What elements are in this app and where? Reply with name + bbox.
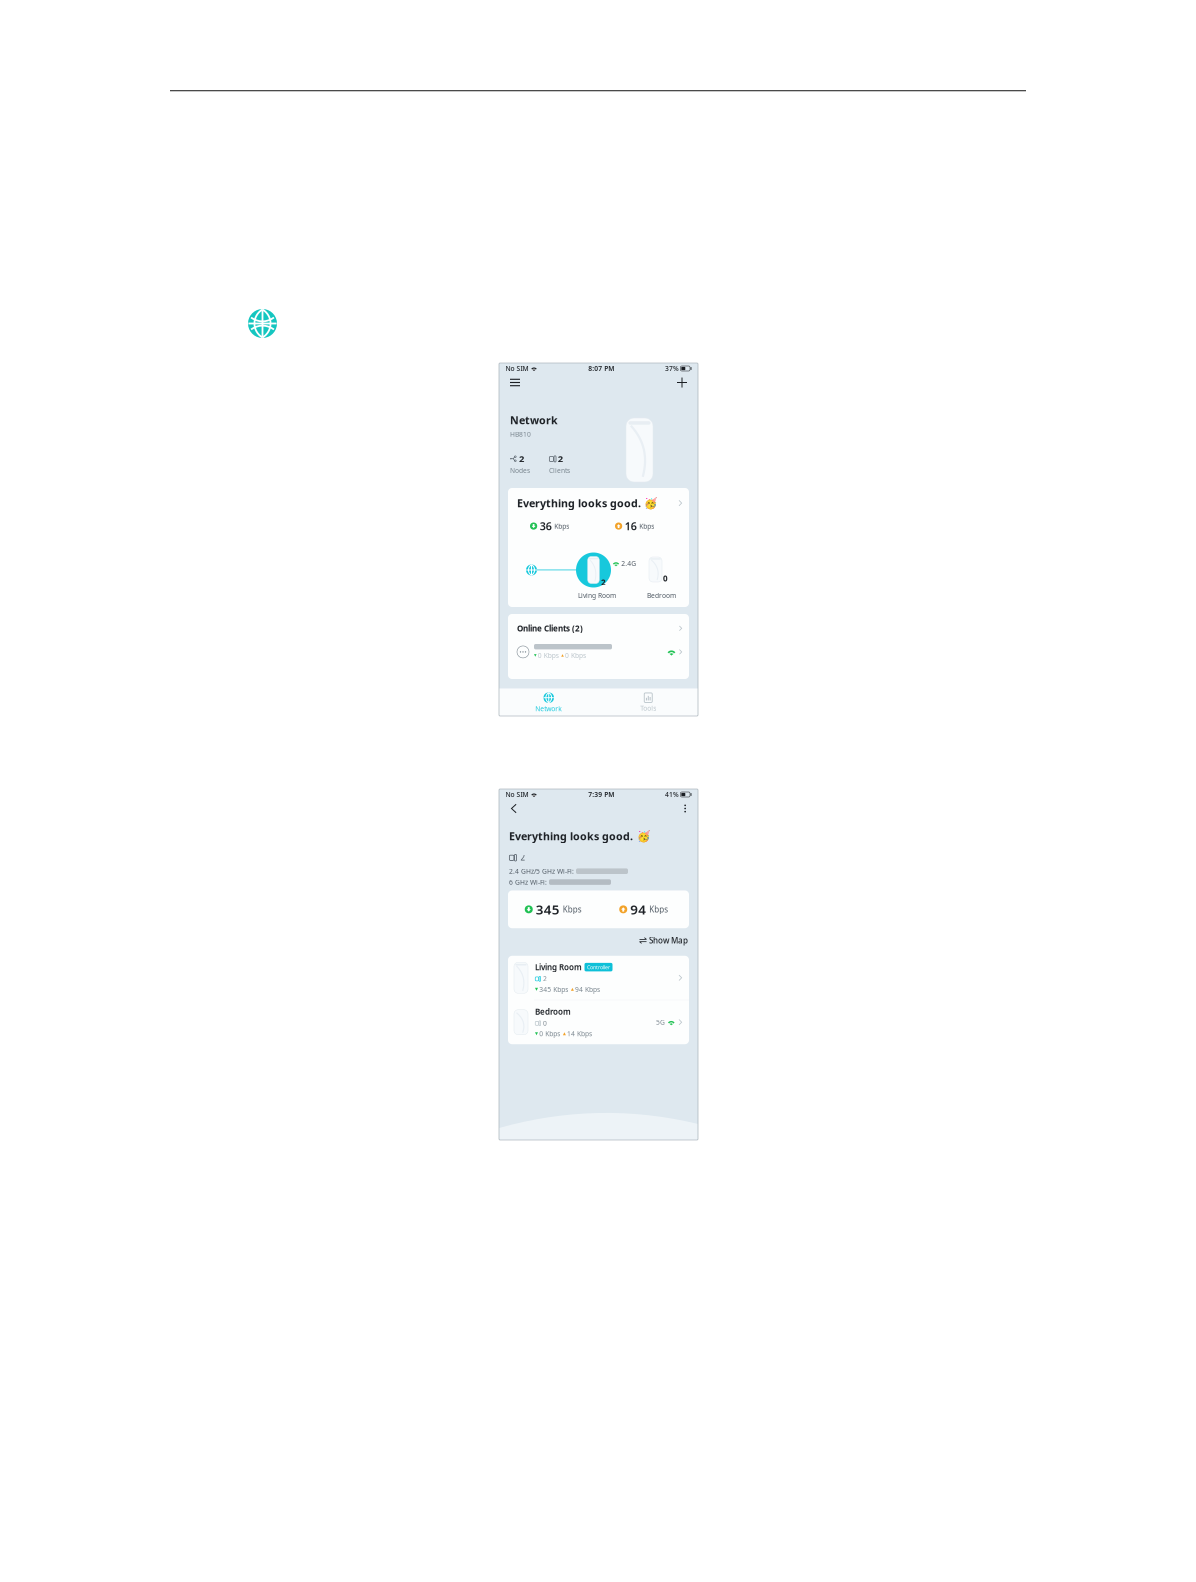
staticText: 6 GHz Wi-Fi: — [509, 878, 547, 886]
staticText: 345 — [536, 900, 560, 918]
button[interactable]: Online Clients (2) — [508, 614, 689, 639]
staticText: 🥳 — [644, 497, 657, 509]
staticText: Living Room — [535, 962, 582, 972]
staticText: 2.4 GHz/5 GHz Wi-Fi: — [509, 867, 574, 876]
staticText: 2 — [601, 577, 606, 588]
staticText: No SIM — [505, 364, 528, 373]
staticText: 0 Kbps — [539, 1029, 560, 1038]
staticText: 0 — [663, 573, 668, 584]
staticText: 2.4G — [621, 559, 636, 568]
button[interactable]: Living Room — [508, 956, 689, 1000]
button[interactable]: Add device — [674, 374, 690, 390]
staticText: 🥳 — [637, 830, 650, 842]
staticText: 2 — [558, 452, 563, 465]
staticText: 0 — [543, 1019, 547, 1028]
button[interactable]: Tools — [598, 693, 698, 712]
staticText: Kbps — [554, 522, 569, 531]
staticText: Bedroom — [647, 591, 676, 600]
staticText: HB810 — [510, 430, 531, 439]
staticText: 37% — [665, 364, 679, 373]
staticText: Bedroom — [535, 1006, 571, 1017]
staticText: 41% — [665, 790, 679, 799]
staticText: 7:39 PM — [588, 790, 614, 799]
staticText: 36 — [540, 519, 552, 533]
staticText: Everything looks good. — [517, 496, 641, 510]
staticText: Clients — [549, 466, 570, 475]
staticText: Show Map — [649, 935, 688, 946]
staticText: 2 — [520, 852, 525, 863]
staticText: Kbps — [639, 522, 654, 531]
button[interactable]: More options — [681, 801, 689, 816]
staticText: Tools — [640, 704, 656, 712]
staticText: Controller — [587, 964, 610, 971]
button[interactable]: Bedroom — [508, 1000, 689, 1044]
staticText: Network — [535, 704, 562, 713]
staticText: 94 — [630, 900, 646, 918]
staticText: Nodes — [510, 466, 530, 475]
button[interactable]: Menu — [507, 376, 523, 389]
button[interactable]: 0 Kbps — [508, 614, 689, 667]
staticText: 94 Kbps — [575, 985, 600, 994]
staticText: Kbps — [563, 904, 582, 915]
staticText: Kbps — [649, 904, 668, 915]
staticText: Online Clients (2) — [517, 623, 583, 634]
staticText: 16 — [625, 519, 637, 533]
staticText: 2 — [543, 974, 547, 983]
button[interactable]: Back — [508, 801, 520, 816]
staticText: Everything looks good. — [509, 829, 633, 843]
staticText: Network — [510, 413, 558, 427]
button[interactable]: Show Map — [639, 935, 688, 946]
staticText: 0 Kbps — [565, 651, 586, 660]
staticText: 2 — [519, 452, 524, 465]
staticText: No SIM — [505, 790, 528, 799]
staticText: Living Room — [578, 591, 616, 600]
button[interactable]: Network — [499, 692, 598, 713]
staticText: 0 Kbps — [538, 651, 559, 660]
staticText: 345 Kbps — [539, 985, 568, 994]
staticText: 14 Kbps — [567, 1029, 592, 1038]
staticText: 8:07 PM — [588, 364, 614, 373]
staticText: 5G — [656, 1018, 665, 1027]
